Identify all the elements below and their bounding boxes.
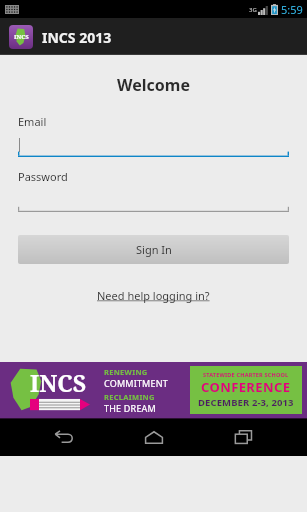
staticText: Sign In xyxy=(136,242,172,257)
button[interactable]: Password input field xyxy=(18,188,289,212)
staticText: COMMITMENT xyxy=(104,377,168,389)
staticText: INCS 2013 xyxy=(42,28,112,47)
staticText: INCS xyxy=(14,33,29,41)
staticText: Password xyxy=(18,169,68,184)
button[interactable]: Sign In xyxy=(18,235,289,264)
button[interactable]: Recent apps xyxy=(217,418,269,456)
button[interactable]: Need help logging in? xyxy=(91,285,216,306)
staticText: Need help logging in? xyxy=(97,288,210,303)
button[interactable]: Home xyxy=(128,418,180,456)
staticText: 3G xyxy=(249,6,257,14)
staticText: THE DREAM xyxy=(104,402,156,414)
staticText: Email xyxy=(18,114,47,129)
staticText: 5:59 xyxy=(281,2,303,17)
button[interactable]: Back xyxy=(38,418,90,456)
staticText: INCS xyxy=(30,367,87,398)
staticText: DECEMBER 2-3, 2013 xyxy=(198,396,294,409)
staticText: CONFERENCE xyxy=(201,378,291,396)
staticText: RECLAIMING xyxy=(104,392,155,402)
staticText: Welcome xyxy=(18,74,289,96)
staticText: STATEWIDE CHARTER SCHOOL xyxy=(203,371,289,378)
button[interactable]: INCS Statewide Charter School Conference… xyxy=(0,362,307,418)
staticText: RENEWING xyxy=(104,367,148,377)
button[interactable]: Email input field xyxy=(18,133,289,157)
